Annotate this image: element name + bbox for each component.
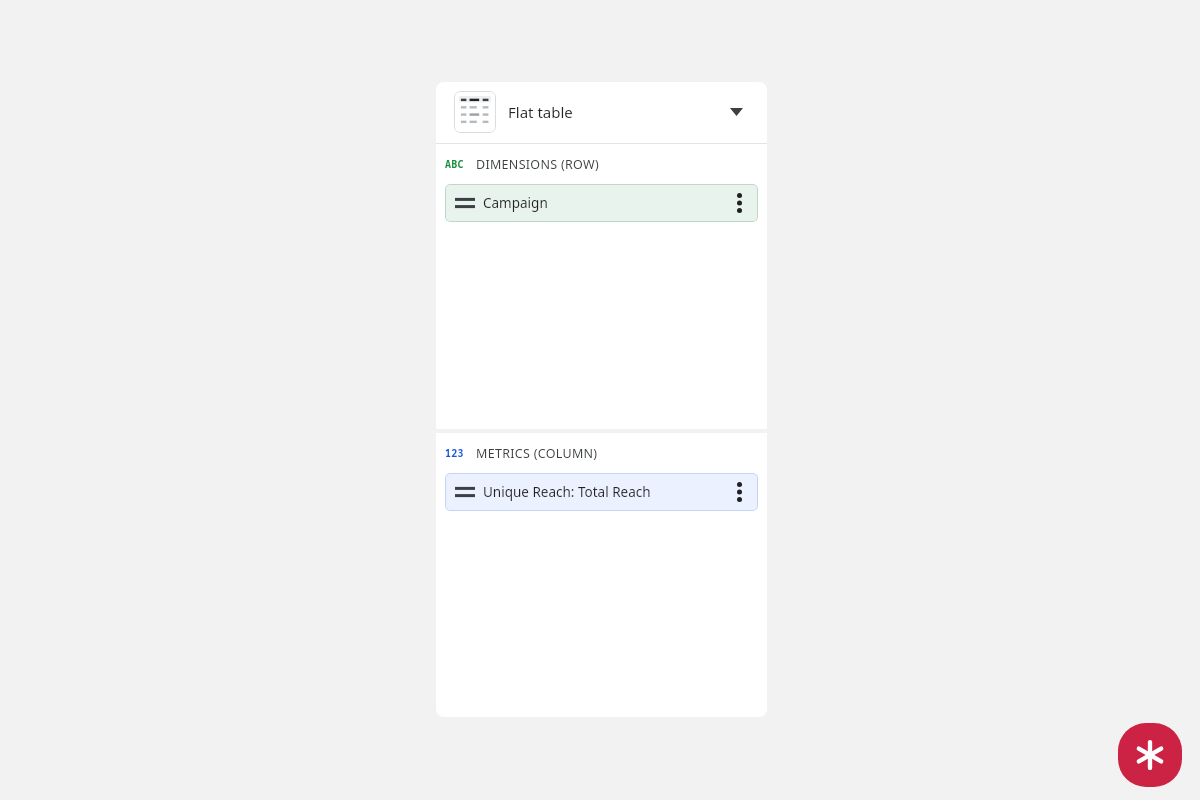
button[interactable]: Campaign xyxy=(445,184,758,222)
button[interactable]: More options xyxy=(724,188,754,218)
staticText: Unique Reach: Total Reach xyxy=(483,483,724,501)
staticText: Campaign xyxy=(483,194,724,212)
staticText: ABC xyxy=(445,157,464,171)
button[interactable]: More options xyxy=(724,477,754,507)
staticText: METRICS (COLUMN) xyxy=(476,445,598,462)
staticText: Flat table xyxy=(508,102,723,122)
button[interactable]: Create xyxy=(1118,723,1182,787)
button[interactable]: Unique Reach: Total Reach xyxy=(445,473,758,511)
staticText: DIMENSIONS (ROW) xyxy=(476,156,599,173)
button[interactable]: Change chart type xyxy=(723,99,749,125)
button[interactable]: Flat table xyxy=(436,82,767,142)
staticText: 123 xyxy=(445,446,464,460)
